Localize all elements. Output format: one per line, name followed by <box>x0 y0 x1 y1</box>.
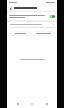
button[interactable]: Back <box>14 100 22 108</box>
button[interactable] <box>33 31 54 36</box>
button[interactable]: Enable <box>7 12 57 20</box>
button[interactable] <box>10 24 54 25</box>
button[interactable]: Recents <box>43 100 51 108</box>
button[interactable]: Back <box>8 6 13 11</box>
button[interactable] <box>10 31 31 36</box>
button[interactable]: Enable <box>49 15 55 18</box>
button[interactable]: Home <box>28 100 36 108</box>
